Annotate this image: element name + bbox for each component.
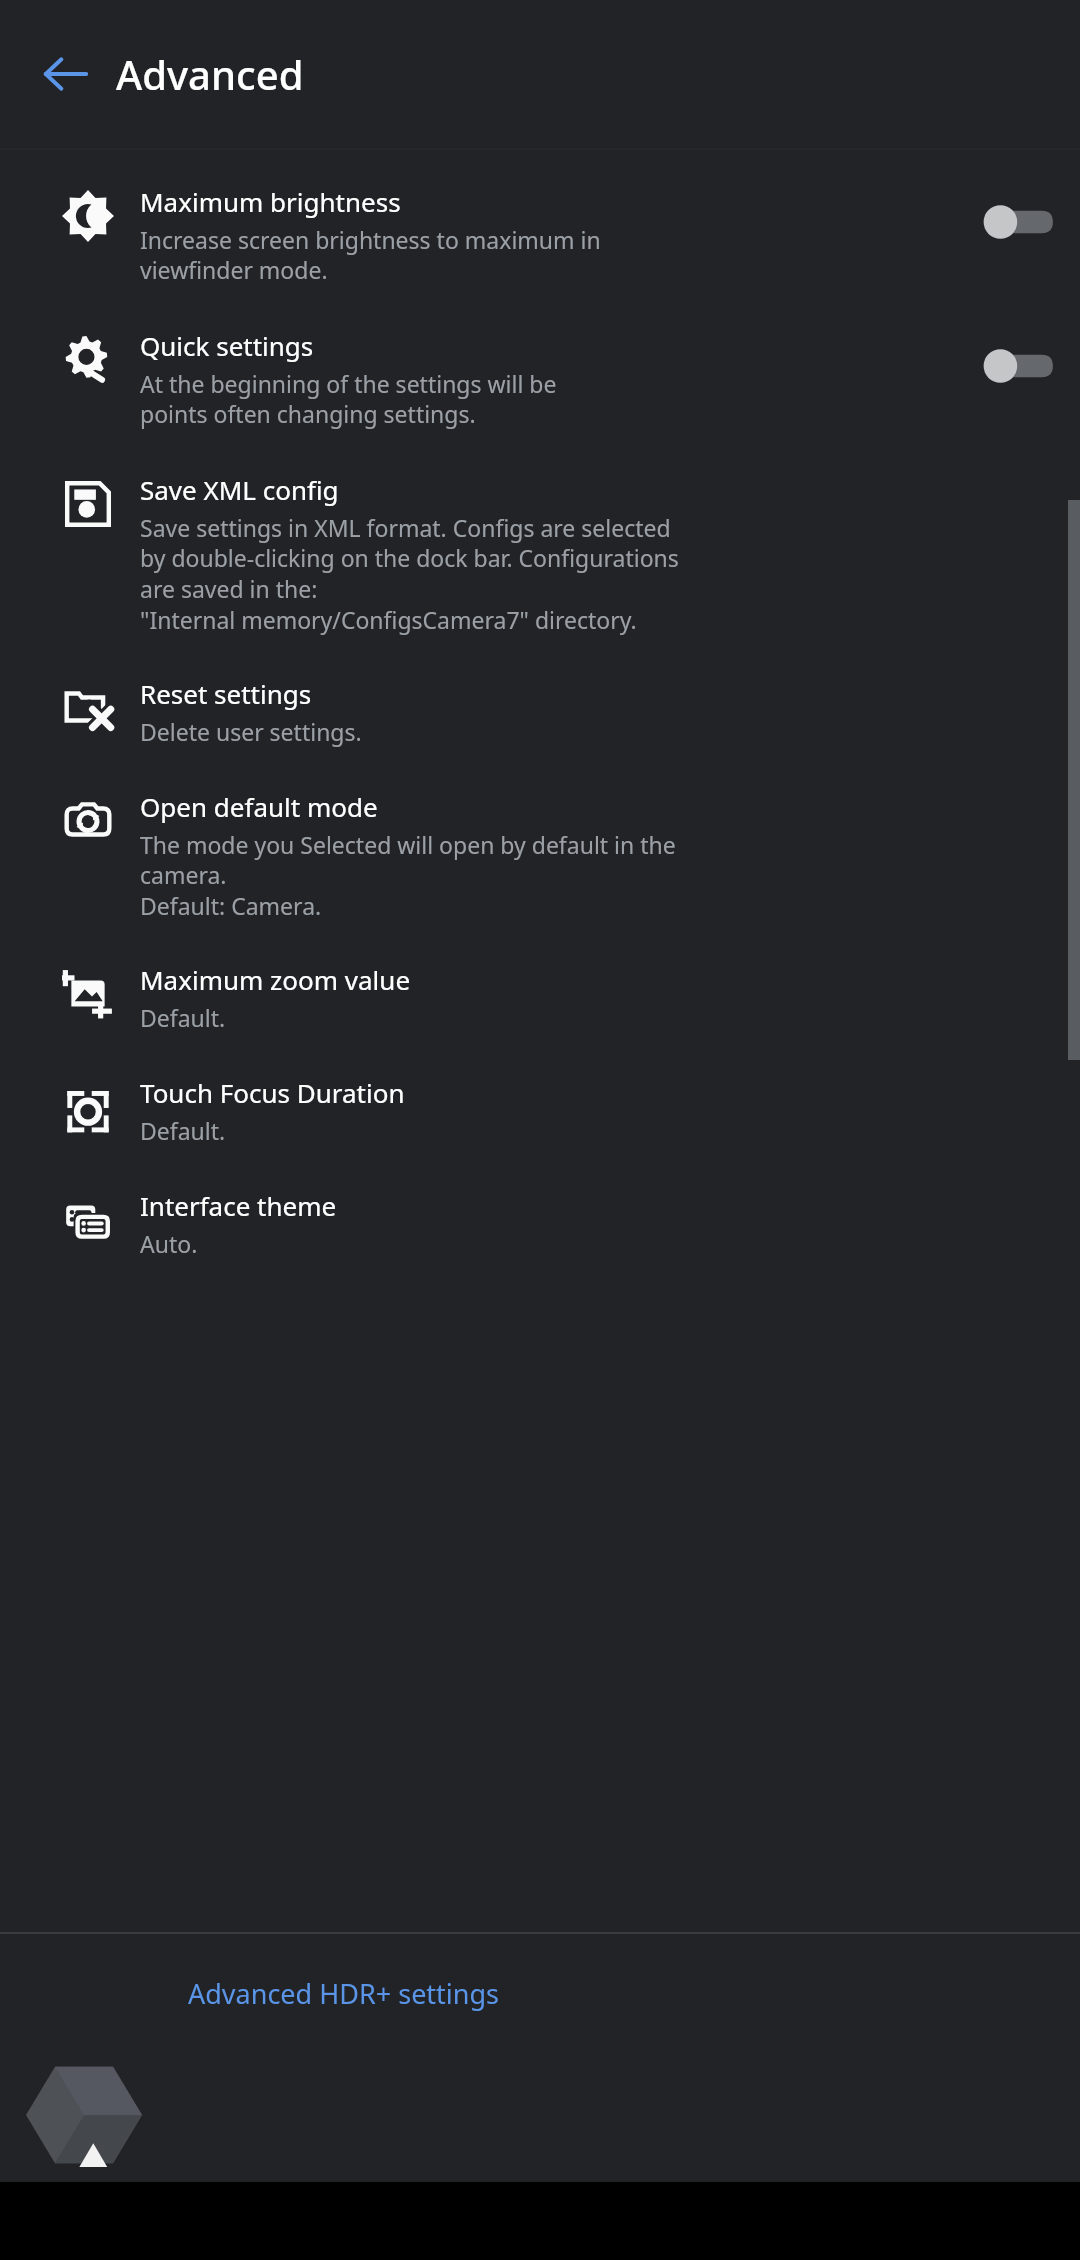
staticText: Increase screen brightness to maximum in… — [140, 224, 601, 286]
button[interactable] — [978, 338, 1056, 394]
button[interactable]: Maximum brightness — [0, 150, 1080, 286]
staticText: Default. — [140, 1002, 226, 1033]
button[interactable]: Touch Focus Duration — [0, 1033, 1080, 1146]
button[interactable]: Quick settings — [0, 286, 1080, 430]
staticText: The mode you Selected will open by defau… — [140, 829, 676, 922]
staticText: Reset settings — [140, 676, 312, 711]
staticText: Maximum brightness — [140, 184, 401, 219]
staticText: Interface theme — [140, 1188, 337, 1223]
staticText: Open default mode — [140, 789, 378, 824]
staticText: Quick settings — [140, 328, 314, 363]
staticText: Default. — [140, 1115, 226, 1146]
button[interactable]: Interface theme — [0, 1146, 1080, 1259]
staticText: At the beginning of the settings will be… — [140, 368, 557, 430]
button[interactable]: Open default mode — [0, 747, 1080, 922]
staticText: Maximum zoom value — [140, 962, 411, 997]
staticText: Delete user settings. — [140, 716, 362, 747]
button[interactable] — [978, 194, 1056, 250]
staticText: Advanced — [116, 47, 304, 101]
button[interactable]: Maximum zoom value — [0, 922, 1080, 1033]
staticText: Auto. — [140, 1228, 198, 1259]
button[interactable]: Advanced HDR+ settings — [0, 1934, 1080, 2052]
button[interactable]: Back — [24, 32, 108, 116]
staticText: Touch Focus Duration — [140, 1075, 405, 1110]
staticText: Save XML config — [140, 472, 339, 507]
button[interactable]: Save XML config — [0, 430, 1080, 636]
staticText: Save settings in XML format. Configs are… — [140, 512, 679, 636]
staticText: Advanced HDR+ settings — [188, 1975, 500, 2012]
button[interactable]: Reset settings — [0, 636, 1080, 747]
